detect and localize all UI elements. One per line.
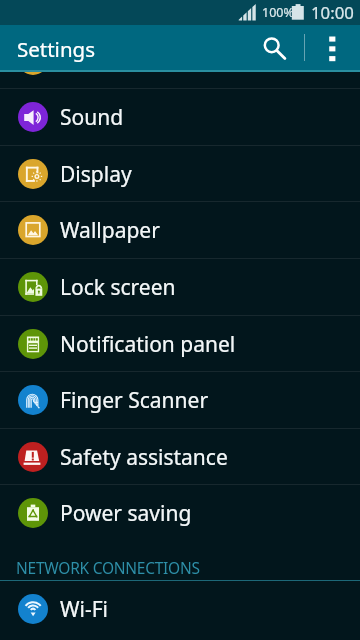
staticText: Wallpaper xyxy=(60,216,160,245)
staticText: Safety assistance xyxy=(60,443,228,472)
staticText: NETWORK CONNECTIONS xyxy=(16,557,200,578)
button[interactable]: Search xyxy=(250,25,298,70)
staticText: Sound xyxy=(60,103,124,132)
button[interactable]: More options xyxy=(312,25,360,70)
button[interactable]: Display xyxy=(0,146,360,202)
staticText: Lock screen xyxy=(60,273,176,302)
staticText: Settings xyxy=(17,35,96,63)
button[interactable]: Lock screen xyxy=(0,259,360,315)
staticText: Power saving xyxy=(60,499,192,528)
button[interactable]: Sound xyxy=(0,89,360,145)
staticText: Display xyxy=(60,160,132,189)
staticText: Notification panel xyxy=(60,330,236,359)
staticText: Finger Scanner xyxy=(60,386,209,415)
button[interactable]: Wi-Fi xyxy=(0,581,360,637)
button[interactable]: Finger Scanner xyxy=(0,372,360,428)
button[interactable]: Notification panel xyxy=(0,316,360,372)
staticText: 10:00 xyxy=(311,1,354,24)
staticText: 100% xyxy=(262,4,294,21)
staticText: Wi-Fi xyxy=(60,595,109,624)
button[interactable]: Power saving xyxy=(0,485,360,541)
button[interactable]: Wallpaper xyxy=(0,202,360,258)
button[interactable]: Safety assistance xyxy=(0,429,360,485)
